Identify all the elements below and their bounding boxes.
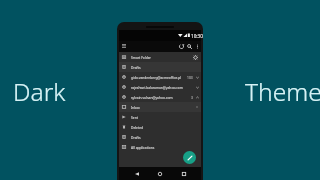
button[interactable]: sylvain.vulsan@yahoo.com <box>119 92 201 102</box>
button[interactable]: All applications <box>119 142 201 152</box>
button[interactable]: Back <box>131 167 143 180</box>
staticText: Dark <box>13 75 66 109</box>
button[interactable]: More options <box>193 41 201 52</box>
staticText: rajeshwri.balaraman@yahoo.com <box>131 85 183 89</box>
button[interactable]: Recent apps <box>178 167 190 180</box>
button[interactable]: Home <box>154 167 166 180</box>
button[interactable]: Drafts <box>119 132 201 142</box>
staticText: All applications <box>131 145 155 149</box>
staticText: 103 <box>187 75 193 79</box>
staticText: Drafts <box>131 65 141 69</box>
button[interactable]: Deleted <box>119 122 201 132</box>
staticText: sylvain.vulsan@yahoo.com <box>131 95 173 99</box>
button[interactable]: Inbox <box>119 102 201 112</box>
staticText: Inbox <box>131 105 140 109</box>
button[interactable]: Compose new message <box>183 151 196 164</box>
button[interactable]: gido.vandenberg@acmeoffice.pl <box>119 72 201 82</box>
button[interactable]: Search <box>185 41 193 52</box>
staticText: 3 <box>191 95 193 99</box>
staticText: Theme <box>245 75 320 109</box>
button[interactable]: Sent <box>119 112 201 122</box>
staticText: Sent <box>131 115 138 119</box>
button[interactable]: Refresh <box>177 41 185 52</box>
staticText: 10:30 <box>191 33 203 39</box>
staticText: Deleted <box>131 125 144 129</box>
staticText: gido.vandenberg@acmeoffice.pl <box>131 75 182 79</box>
staticText: Drafts <box>131 135 141 139</box>
button[interactable]: Open navigation drawer <box>120 42 128 50</box>
button[interactable]: rajeshwri.balaraman@yahoo.com <box>119 82 201 92</box>
button[interactable]: Smart Folder <box>119 52 201 62</box>
staticText: Smart Folder <box>131 55 151 59</box>
button[interactable]: Drafts <box>119 62 201 72</box>
